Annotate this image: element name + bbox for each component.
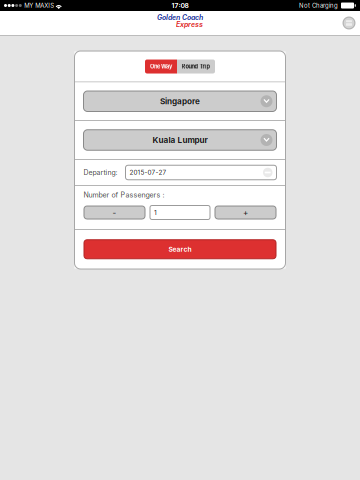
- button[interactable]: 2015-07-27: [125, 165, 276, 180]
- button[interactable]: Singapore: [83, 91, 276, 111]
- button[interactable]: Search: [84, 240, 276, 259]
- staticText: Departing:: [83, 168, 117, 177]
- staticText: 2015-07-27: [129, 169, 166, 176]
- staticText: MY MAXIS: [24, 2, 54, 9]
- staticText: Express: [176, 20, 203, 29]
- button[interactable]: +: [215, 206, 276, 219]
- staticText: +: [243, 208, 248, 217]
- button[interactable]: One Way: [145, 59, 177, 73]
- staticText: 17:08: [171, 1, 188, 10]
- staticText: Golden Coach: [157, 13, 203, 22]
- staticText: Round Trip: [181, 63, 210, 70]
- button[interactable]: -: [84, 206, 145, 219]
- staticText: Search: [168, 245, 191, 253]
- button[interactable]: Menu: [340, 14, 358, 32]
- staticText: Kuala Lumpur: [152, 135, 207, 145]
- staticText: -: [112, 208, 116, 217]
- button[interactable]: Round Trip: [177, 59, 215, 73]
- staticText: Singapore: [160, 96, 200, 106]
- button[interactable]: Kuala Lumpur: [83, 130, 276, 150]
- staticText: Number of Passengers :: [83, 191, 164, 199]
- staticText: 1: [154, 208, 157, 217]
- staticText: One Way: [150, 63, 172, 70]
- staticText: Not Charging: [299, 2, 338, 9]
